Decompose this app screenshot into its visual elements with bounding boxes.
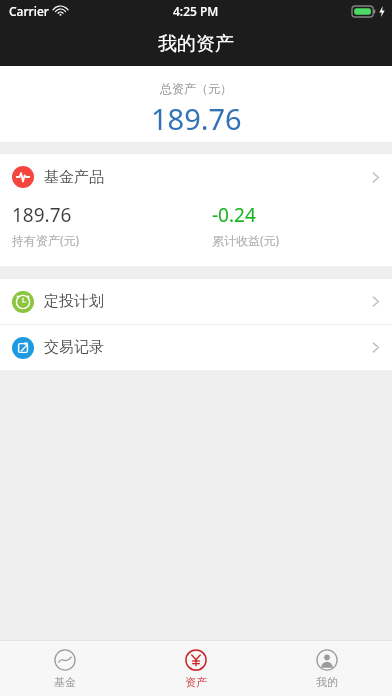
staticText: 总资产（元） (160, 81, 232, 96)
staticText: 我的资产 (158, 32, 234, 56)
staticText: 基金 (54, 675, 76, 689)
staticText: 资产 (185, 675, 207, 689)
staticText: 累计收益(元) (212, 232, 280, 248)
staticText: 我的 (316, 675, 338, 689)
button[interactable]: 我的 (261, 641, 392, 696)
staticText: 交易记录 (44, 338, 104, 357)
staticText: 定投计划 (44, 292, 104, 311)
button[interactable]: 交易记录 (0, 325, 392, 370)
staticText: -0.24 (212, 202, 256, 228)
staticText: 基金产品 (44, 168, 104, 187)
staticText: Carrier (9, 3, 49, 19)
button[interactable]: 基金产品 (0, 154, 392, 266)
button[interactable]: 定投计划 (0, 279, 392, 324)
staticText: 189.76 (12, 202, 72, 228)
button[interactable]: 基金 (0, 641, 130, 696)
staticText: 持有资产(元) (12, 232, 80, 248)
staticText: 4:25 PM (173, 3, 219, 19)
button[interactable]: 资产 (130, 641, 261, 696)
staticText: 189.76 (151, 99, 242, 138)
